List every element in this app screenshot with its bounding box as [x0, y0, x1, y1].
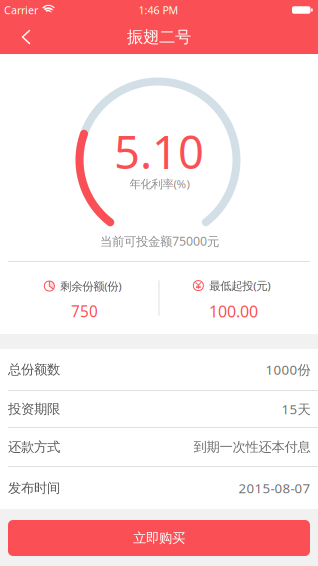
staticText: 还款方式	[8, 439, 60, 455]
staticText: 总份额数	[8, 361, 60, 378]
staticText: 1000份	[265, 360, 310, 379]
button[interactable]: 发布时间	[0, 467, 318, 509]
staticText: 当前可投金额75000元	[100, 233, 219, 249]
button[interactable]: 投资期限	[0, 391, 318, 428]
staticText: 立即购买	[133, 530, 185, 546]
button[interactable]: 立即购买	[8, 520, 310, 556]
staticText: 发布时间	[8, 480, 60, 496]
staticText: 投资期限	[8, 401, 60, 417]
staticText: 到期一次性还本付息	[193, 439, 310, 455]
staticText: 振翅二号	[127, 27, 191, 47]
staticText: Carrier	[4, 3, 38, 17]
button[interactable]: 总份额数	[0, 349, 318, 391]
button[interactable]: 还款方式	[0, 428, 318, 467]
staticText: 1:46 PM	[138, 3, 178, 17]
staticText: 15天	[281, 400, 310, 418]
staticText: 2015-08-07	[238, 479, 310, 497]
button[interactable]: Back	[8, 20, 44, 54]
staticText: 750	[71, 301, 98, 322]
staticText: 剩余份额(份)	[60, 278, 121, 294]
staticText: 5.10	[114, 121, 204, 182]
staticText: 100.00	[209, 300, 258, 322]
staticText: 最低起投(元)	[209, 278, 270, 293]
staticText: 年化利率(%)	[129, 176, 189, 191]
